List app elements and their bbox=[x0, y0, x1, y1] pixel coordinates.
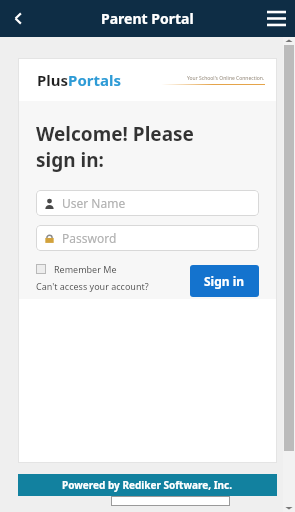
staticText: Sign in bbox=[204, 273, 245, 289]
button[interactable]: Language selector bbox=[111, 496, 230, 506]
button[interactable]: Can't access your account? bbox=[36, 280, 149, 292]
staticText: Your School's Online Connection. bbox=[187, 75, 265, 82]
staticText: PlusPortals bbox=[37, 70, 121, 90]
staticText: Powered by Rediker Software, Inc. bbox=[62, 478, 233, 492]
button[interactable]: Menu bbox=[258, 0, 295, 37]
button[interactable]: Password bbox=[36, 225, 259, 251]
staticText: Parent Portal bbox=[101, 9, 194, 28]
staticText: Welcome! Please sign in: bbox=[36, 121, 194, 172]
staticText: Remember Me bbox=[54, 263, 117, 275]
staticText: User Name bbox=[62, 195, 126, 211]
button[interactable]: Sign in bbox=[190, 265, 259, 297]
button[interactable]: Remember Me bbox=[36, 263, 117, 275]
button[interactable]: User Name bbox=[36, 190, 259, 216]
staticText: Password bbox=[62, 230, 117, 246]
button[interactable]: Back bbox=[0, 0, 37, 37]
